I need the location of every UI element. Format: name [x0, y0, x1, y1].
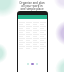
staticText: Organise and plan all your work in one s…	[18, 1, 46, 11]
button[interactable]: Page 2, current	[31, 63, 34, 65]
